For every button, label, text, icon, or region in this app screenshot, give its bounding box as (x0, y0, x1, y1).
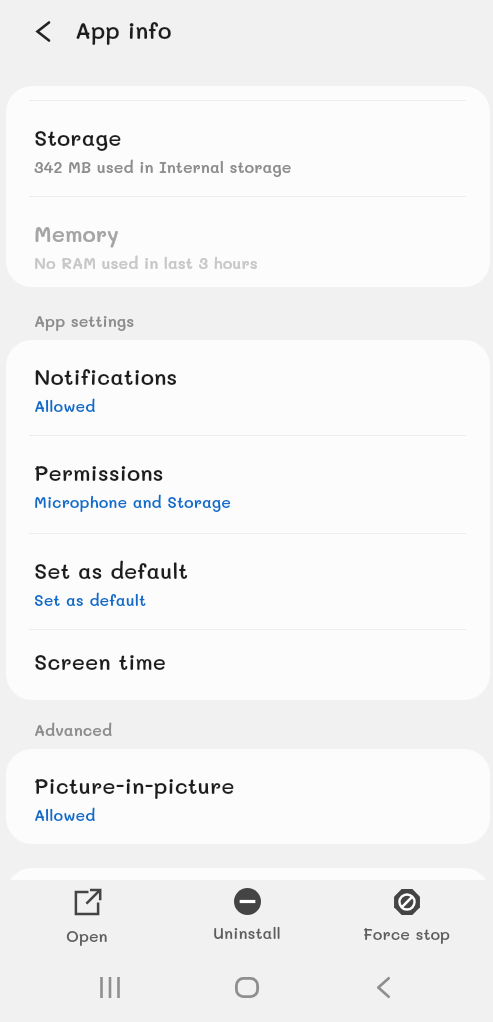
staticText: Microphone and Storage (34, 491, 231, 512)
staticText: Force stop (363, 923, 451, 944)
button[interactable]: Memory (6, 197, 490, 287)
staticText: Advanced (34, 719, 113, 740)
button[interactable]: Uninstall (167, 880, 327, 949)
staticText: Picture-in-picture (34, 771, 235, 800)
button[interactable]: Back (356, 960, 410, 1014)
button[interactable]: Screen time (6, 630, 490, 700)
staticText: Set as default (34, 556, 189, 585)
staticText: Set as default (34, 589, 147, 610)
staticText: Allowed (34, 804, 96, 825)
button[interactable]: Set as default (6, 534, 490, 629)
staticText: App settings (34, 310, 135, 331)
staticText: Permissions (34, 458, 164, 487)
button[interactable]: Home (220, 960, 274, 1014)
staticText: Uninstall (213, 922, 281, 943)
staticText: Open (66, 925, 108, 946)
staticText: No RAM used in last 3 hours (34, 252, 258, 273)
staticText: 342 MB used in Internal storage (34, 156, 292, 177)
button[interactable]: Permissions (6, 436, 490, 533)
button[interactable]: Open (6, 880, 167, 952)
button[interactable]: Navigate up (25, 13, 61, 49)
staticText: Allowed (34, 395, 96, 416)
button[interactable]: Picture-in-picture (6, 749, 490, 844)
staticText: Notifications (34, 362, 178, 391)
staticText: Memory (34, 219, 119, 248)
staticText: Screen time (34, 647, 167, 676)
button[interactable]: Notifications (6, 340, 490, 435)
staticText: App info (75, 15, 172, 45)
button[interactable]: Recent apps (83, 960, 137, 1014)
button[interactable]: Force stop (327, 880, 487, 950)
staticText: Storage (34, 123, 122, 152)
button[interactable]: Storage (6, 101, 490, 196)
